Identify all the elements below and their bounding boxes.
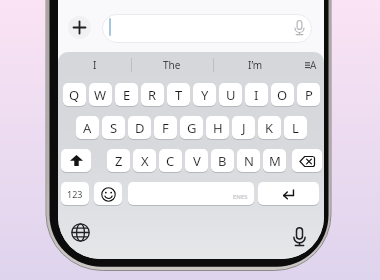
staticText: I <box>254 86 259 104</box>
staticText: P <box>305 86 313 104</box>
staticText: A <box>83 119 92 137</box>
staticText: M <box>269 152 281 170</box>
staticText: R <box>148 86 157 104</box>
button[interactable]: P <box>297 83 320 107</box>
button[interactable]: E <box>115 83 138 107</box>
button[interactable] <box>94 182 122 206</box>
staticText: B <box>218 152 227 170</box>
staticText: E <box>123 86 131 104</box>
button[interactable] <box>102 14 312 43</box>
button[interactable]: T <box>167 83 190 107</box>
button[interactable]: I <box>245 83 268 107</box>
button[interactable]: C <box>159 149 182 173</box>
button[interactable]: V <box>185 149 208 173</box>
staticText: G <box>187 119 197 137</box>
button[interactable] <box>68 220 93 245</box>
button[interactable]: B <box>211 149 234 173</box>
button[interactable]: W <box>89 83 112 107</box>
staticText: L <box>292 119 299 137</box>
staticText: Q <box>69 86 80 104</box>
button[interactable]: The <box>131 52 213 78</box>
staticText: I <box>93 58 97 72</box>
staticText: F <box>162 119 169 137</box>
button[interactable]: A <box>298 52 324 78</box>
button[interactable]: Z <box>107 149 130 173</box>
button[interactable] <box>292 149 322 173</box>
button[interactable]: N <box>237 149 260 173</box>
staticText: 123 <box>67 188 83 200</box>
button[interactable]: M <box>263 149 286 173</box>
staticText: D <box>135 119 145 137</box>
staticText: J <box>242 119 246 137</box>
button[interactable]: I’m <box>213 52 298 78</box>
staticText: U <box>226 86 236 104</box>
button[interactable] <box>258 182 319 206</box>
button[interactable]: Y <box>193 83 216 107</box>
button[interactable]: F <box>154 116 177 140</box>
button[interactable]: D <box>128 116 151 140</box>
staticText: T <box>175 86 183 104</box>
staticText: V <box>193 152 201 170</box>
button[interactable]: 123 <box>61 182 89 206</box>
button[interactable]: H <box>206 116 229 140</box>
button[interactable]: K <box>258 116 281 140</box>
button[interactable]: J <box>232 116 255 140</box>
button[interactable]: O <box>271 83 294 107</box>
button[interactable]: I <box>58 52 131 78</box>
button[interactable]: L <box>284 116 307 140</box>
button[interactable]: R <box>141 83 164 107</box>
button[interactable]: Q <box>63 83 86 107</box>
staticText: A <box>310 58 317 72</box>
staticText: S <box>110 119 118 137</box>
button[interactable]: S <box>102 116 125 140</box>
staticText: ENES <box>233 193 248 201</box>
button[interactable] <box>68 16 91 39</box>
staticText: X <box>141 152 149 170</box>
staticText: I’m <box>248 58 263 72</box>
button[interactable]: U <box>219 83 242 107</box>
staticText: O <box>277 86 288 104</box>
button[interactable]: A <box>76 116 99 140</box>
staticText: K <box>265 119 274 137</box>
button[interactable]: G <box>180 116 203 140</box>
staticText: N <box>244 152 254 170</box>
button[interactable] <box>61 149 91 173</box>
button[interactable]: ENES <box>128 182 254 206</box>
staticText: Y <box>201 86 209 104</box>
button[interactable] <box>286 224 312 250</box>
staticText: H <box>213 119 223 137</box>
staticText: W <box>94 86 107 104</box>
staticText: The <box>163 58 181 72</box>
staticText: Z <box>115 152 123 170</box>
button[interactable]: X <box>133 149 156 173</box>
staticText: C <box>166 152 175 170</box>
